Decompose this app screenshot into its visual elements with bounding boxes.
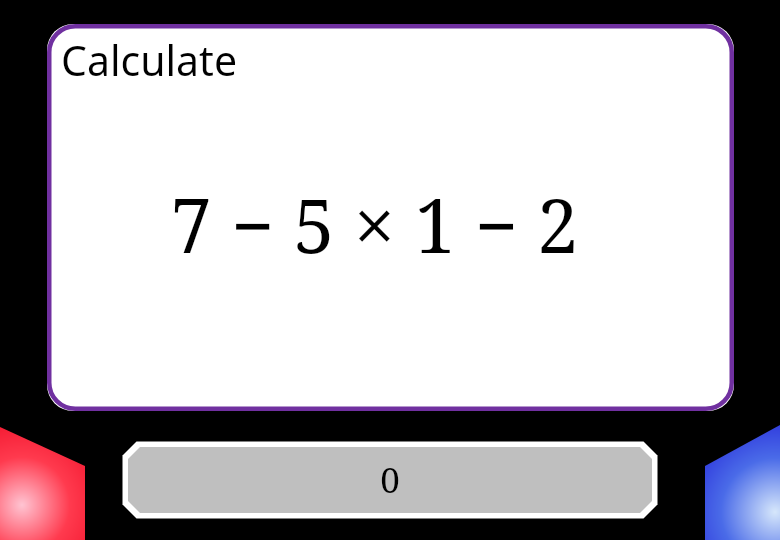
button[interactable]: Calculate bbox=[47, 24, 734, 411]
staticText: 0 bbox=[380, 456, 400, 504]
staticText: 7 − 5 × 1 − 2 bbox=[31, 174, 718, 274]
staticText: Calculate bbox=[61, 32, 238, 88]
button[interactable]: Answer 0 bbox=[121, 440, 659, 520]
